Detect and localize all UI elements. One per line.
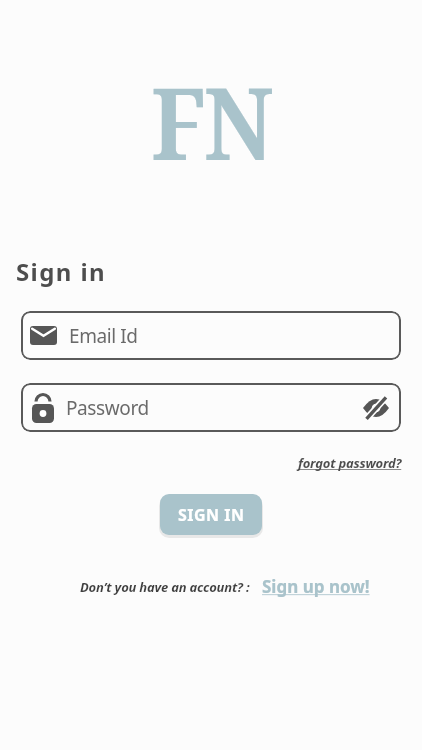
staticText: SIGN IN	[178, 504, 245, 526]
button[interactable]: Email Id	[21, 311, 401, 360]
button[interactable]	[363, 396, 389, 420]
button[interactable]: SIGN IN	[160, 494, 262, 535]
button[interactable]: Password	[21, 383, 401, 432]
button[interactable]: forgot password?	[298, 454, 402, 472]
staticText: Sign in	[16, 255, 106, 288]
staticText: FN	[151, 53, 272, 189]
staticText: Email Id	[69, 323, 138, 349]
staticText: Password	[66, 395, 363, 421]
button[interactable]: Sign up now!	[262, 575, 370, 598]
staticText: Don’t you have an account? :	[80, 578, 253, 596]
